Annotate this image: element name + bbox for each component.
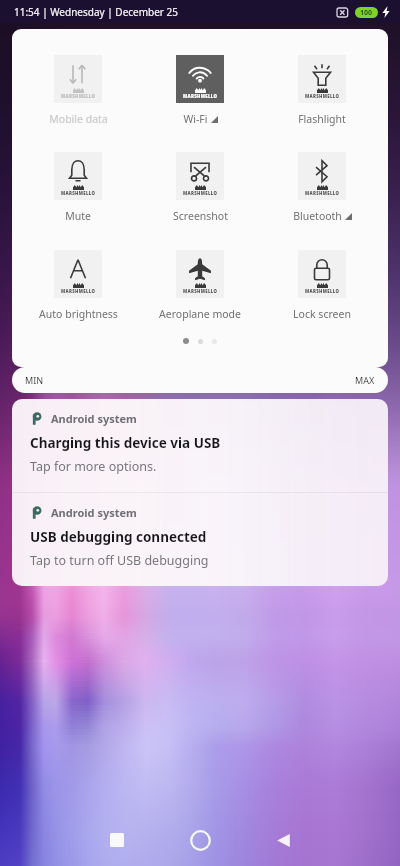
staticText: MARSHMELLO — [61, 190, 96, 196]
button[interactable]: Android system — [12, 493, 388, 586]
staticText: Charging this device via USB — [30, 434, 221, 452]
staticText: MARSHMELLO — [305, 288, 340, 294]
button[interactable]: Home — [179, 819, 221, 861]
button[interactable]: MARSHMELLO — [266, 250, 378, 321]
staticText: Bluetooth — [293, 209, 342, 223]
button[interactable]: MARSHMELLO — [266, 152, 378, 223]
staticText: 100 — [360, 8, 373, 18]
staticText: Wi-Fi — [183, 112, 208, 126]
staticText: Android system — [51, 505, 137, 520]
staticText: Android system — [51, 411, 137, 426]
button[interactable]: MARSHMELLO — [22, 250, 134, 321]
staticText: Mute — [65, 209, 91, 223]
staticText: MIN — [25, 374, 44, 386]
button[interactable]: MARSHMELLO — [266, 55, 378, 126]
button[interactable]: MARSHMELLO — [144, 152, 256, 223]
staticText: Auto brightness — [39, 307, 118, 321]
button[interactable]: MIN — [12, 367, 388, 393]
staticText: MARSHMELLO — [305, 190, 340, 196]
button[interactable]: Back — [262, 819, 304, 861]
button[interactable]: MARSHMELLO — [144, 250, 256, 321]
staticText: 11:54 | Wednesday | December 25 — [14, 5, 179, 19]
staticText: MARSHMELLO — [61, 93, 96, 99]
staticText: MARSHMELLO — [183, 93, 218, 99]
button[interactable]: MARSHMELLO — [22, 55, 134, 126]
button[interactable]: Android system — [12, 399, 388, 492]
staticText: Lock screen — [293, 307, 351, 321]
staticText: MARSHMELLO — [183, 288, 218, 294]
button[interactable]: Recent apps — [96, 819, 138, 861]
staticText: Flashlight — [298, 112, 346, 126]
staticText: Mobile data — [49, 112, 108, 126]
staticText: Screenshot — [173, 209, 228, 223]
staticText: MAX — [355, 374, 375, 386]
staticText: Tap for more options. — [30, 458, 157, 475]
staticText: USB debugging connected — [30, 528, 207, 546]
staticText: Tap to turn off USB debugging — [30, 552, 209, 569]
staticText: Aeroplane mode — [159, 307, 241, 321]
staticText: MARSHMELLO — [183, 190, 218, 196]
staticText: MARSHMELLO — [61, 288, 96, 294]
staticText: MARSHMELLO — [305, 93, 340, 99]
button[interactable]: MARSHMELLO — [22, 152, 134, 223]
button[interactable]: MARSHMELLO — [144, 55, 256, 126]
